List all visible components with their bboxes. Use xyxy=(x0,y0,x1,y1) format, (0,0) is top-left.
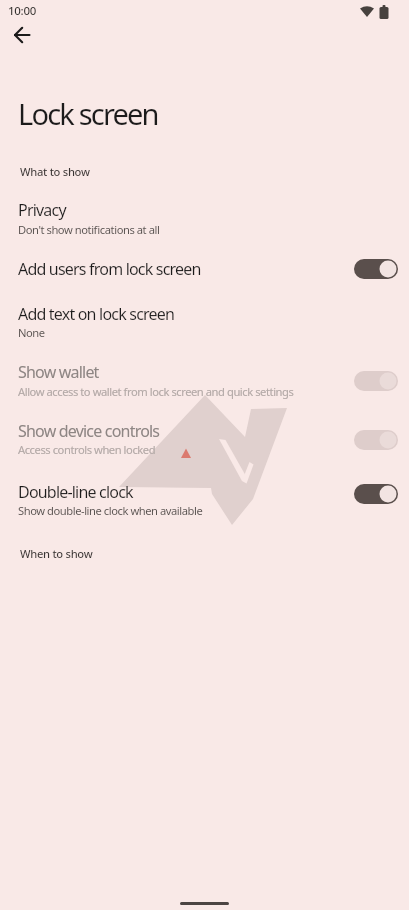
staticText: None xyxy=(18,325,45,340)
staticText: Add users from lock screen xyxy=(18,258,201,280)
button[interactable] xyxy=(4,18,40,54)
staticText: Don't show notifications at all xyxy=(18,222,160,237)
staticText: Allow access to wallet from lock screen … xyxy=(18,384,294,399)
staticText: When to show xyxy=(20,546,93,561)
staticText: Show double-line clock when available xyxy=(18,503,203,518)
button[interactable]: Show wallet xyxy=(0,350,409,409)
staticText: 10:00 xyxy=(8,3,36,19)
staticText: Show device controls xyxy=(18,420,160,442)
staticText: Show wallet xyxy=(18,361,99,383)
button[interactable]: Double-line clock xyxy=(0,468,409,530)
button[interactable]: Add users from lock screen xyxy=(0,244,409,292)
button[interactable]: Add text on lock screen xyxy=(0,292,409,350)
staticText: Privacy xyxy=(18,199,66,221)
staticText: What to show xyxy=(20,164,90,179)
button[interactable]: Privacy xyxy=(0,186,409,244)
button[interactable]: Show device controls xyxy=(0,409,409,468)
staticText: Add text on lock screen xyxy=(18,303,175,325)
staticText: Lock screen xyxy=(18,94,158,133)
staticText: Double-line clock xyxy=(18,481,133,503)
staticText: Access controls when locked xyxy=(18,442,156,457)
